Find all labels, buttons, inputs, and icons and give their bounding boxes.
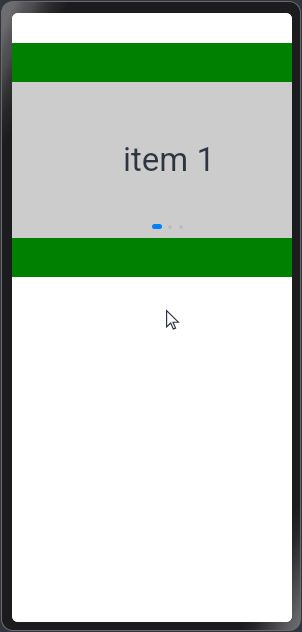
- staticText: item 1: [123, 140, 215, 179]
- button[interactable]: item 1: [12, 82, 292, 238]
